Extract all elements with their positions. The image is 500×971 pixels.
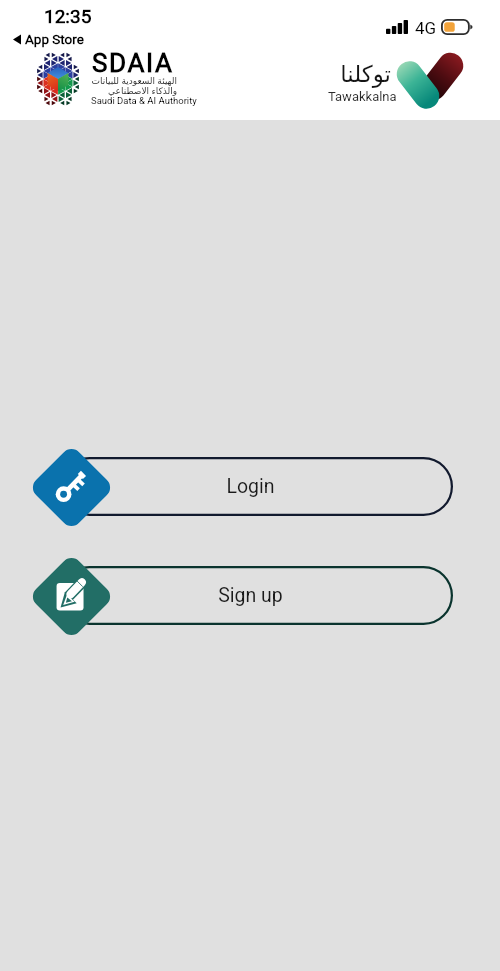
staticText: Sign up	[218, 584, 283, 607]
staticText: Saudi Data & AI Authority	[91, 95, 197, 106]
staticText: App Store	[25, 31, 84, 47]
staticText: توكلنا	[329, 61, 391, 88]
staticText: Tawakkalna	[328, 89, 397, 104]
button[interactable]: Login	[0, 427, 500, 546]
button[interactable]: Sign up	[0, 536, 500, 655]
staticText: والذكاء الاصطناعي	[91, 84, 177, 96]
staticText: 12:35	[44, 5, 92, 27]
staticText: 4G	[415, 18, 437, 38]
staticText: SDAIA	[92, 48, 174, 78]
staticText: الهيئة السعودية للبيانات	[91, 74, 177, 86]
staticText: Login	[226, 475, 275, 498]
